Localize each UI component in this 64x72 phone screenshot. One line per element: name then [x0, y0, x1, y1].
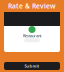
staticText: Rate & Review — [8, 2, 56, 10]
button[interactable]: Submit — [4, 62, 60, 70]
staticText: Restaurant — [23, 33, 41, 38]
staticText: Submit — [24, 63, 39, 69]
